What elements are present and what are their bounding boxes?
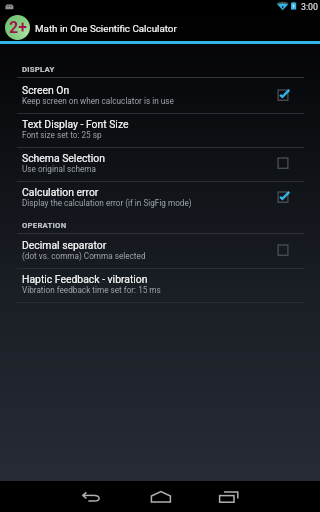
staticText: (dot vs. comma) Comma selected [22,251,146,261]
staticText: Decimal separator [22,239,107,251]
button[interactable]: Schema Selection [0,148,320,182]
staticText: Use original schema [22,164,96,174]
staticText: Calculation error [22,186,99,198]
staticText: Keep screen on when calcuclator is in us… [22,96,174,106]
button[interactable]: Home [139,481,183,512]
button[interactable]: 2+ [0,14,320,41]
staticText: Display the calculation error (if in Sig… [22,198,192,208]
staticText: Vibration feedback time set for: 15 ms [22,285,161,295]
staticText: Text Display - Font Size [22,118,129,130]
staticText: Math in One Scientific Calculator [35,23,177,34]
staticText: Haptic Feedback - vibration [22,273,148,285]
staticText: OPERATION [22,221,67,230]
button[interactable]: Calculation error [0,182,320,216]
staticText: Schema Selection [22,152,105,164]
staticText: Font size set to: 25 sp [22,130,102,140]
button[interactable]: Screen On [0,80,320,114]
staticText: 3:00 [301,2,318,12]
button[interactable]: Haptic Feedback - vibration [0,269,320,303]
staticText: 2+ [9,18,27,37]
button[interactable]: Text Display - Font Size [0,114,320,148]
button[interactable]: Recent apps [207,481,251,512]
staticText: DISPLAY [22,65,55,74]
button[interactable]: Back [70,481,114,512]
button[interactable]: Decimal separator [0,235,320,269]
staticText: Screen On [22,84,70,96]
